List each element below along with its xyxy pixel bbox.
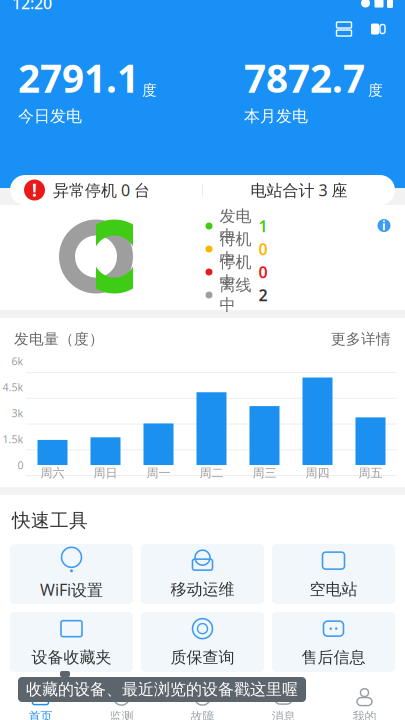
button[interactable]: 设备收藏夹 [10, 612, 133, 672]
button[interactable]: 空电站 [272, 544, 395, 604]
button[interactable]: 我的 [324, 684, 405, 720]
staticText: 12:20 [12, 0, 52, 14]
staticText: 2791.1 [18, 52, 139, 103]
staticText: 收藏的设备、最近浏览的设备戳这里喔 [26, 680, 298, 699]
button[interactable]: 电站合计 3 座 [203, 175, 395, 205]
staticText: 监测 [109, 709, 133, 720]
staticText: 今日发电 [18, 106, 82, 126]
button[interactable]: 扫一扫 [327, 14, 361, 44]
button[interactable]: 移动运维 [141, 544, 264, 604]
staticText: 停机中 [219, 252, 251, 292]
staticText: 6k [11, 354, 23, 368]
staticText: 2 [258, 284, 267, 306]
staticText: i [382, 218, 386, 233]
staticText: 我的 [352, 709, 376, 720]
staticText: 周一 [146, 466, 170, 480]
staticText: 发电中 [219, 206, 251, 246]
staticText: 0 [258, 238, 267, 260]
staticText: 7872.7 [244, 52, 365, 103]
staticText: 质保查询 [170, 648, 234, 667]
staticText: 周五 [358, 466, 382, 480]
staticText: 1 [258, 215, 267, 237]
staticText: 本月发电 [244, 106, 308, 126]
staticText: 度 [368, 81, 383, 99]
staticText: 3k [11, 406, 23, 420]
button[interactable]: WiFi设置 [10, 544, 133, 604]
staticText: 异常停机 0 台 [53, 179, 150, 201]
staticText: 售后信息 [301, 648, 365, 667]
staticText: 空电站 [309, 580, 357, 599]
staticText: 快速工具 [12, 509, 88, 532]
staticText: 周三 [252, 466, 276, 480]
button[interactable]: 故障 [162, 684, 243, 720]
button[interactable]: 质保查询 [141, 612, 264, 672]
staticText: 待机中 [219, 229, 251, 269]
button[interactable]: 售后信息 [272, 612, 395, 672]
staticText: 度 [142, 81, 157, 99]
staticText: 移动运维 [170, 580, 234, 599]
staticText: 周六 [40, 466, 64, 480]
staticText: WiFi设置 [40, 579, 103, 600]
staticText: 1.5k [2, 432, 23, 446]
staticText: 故障 [190, 709, 214, 720]
button[interactable]: 消息 [243, 684, 324, 720]
staticText: 周二 [199, 466, 223, 480]
staticText: 更多详情 [331, 330, 391, 348]
staticText: 0 [17, 458, 23, 472]
button[interactable]: 说明 [369, 210, 399, 240]
staticText: 首页 [28, 709, 52, 720]
staticText: 设备收藏夹 [31, 648, 111, 667]
staticText: ! [32, 178, 37, 201]
button[interactable]: 公告 [361, 14, 395, 44]
staticText: 周四 [305, 466, 329, 480]
staticText: 消息 [271, 709, 295, 720]
staticText: 0 [258, 261, 267, 283]
staticText: 4.5k [2, 380, 23, 394]
button[interactable]: 更多详情 [331, 330, 391, 348]
staticText: 离线中 [219, 275, 251, 315]
staticText: 发电量（度） [14, 330, 104, 348]
staticText: 周日 [93, 466, 117, 480]
button[interactable]: ! [10, 175, 202, 205]
button[interactable]: 监测 [81, 684, 162, 720]
button[interactable]: 首页 [0, 684, 81, 720]
staticText: 电站合计 3 座 [250, 179, 347, 201]
